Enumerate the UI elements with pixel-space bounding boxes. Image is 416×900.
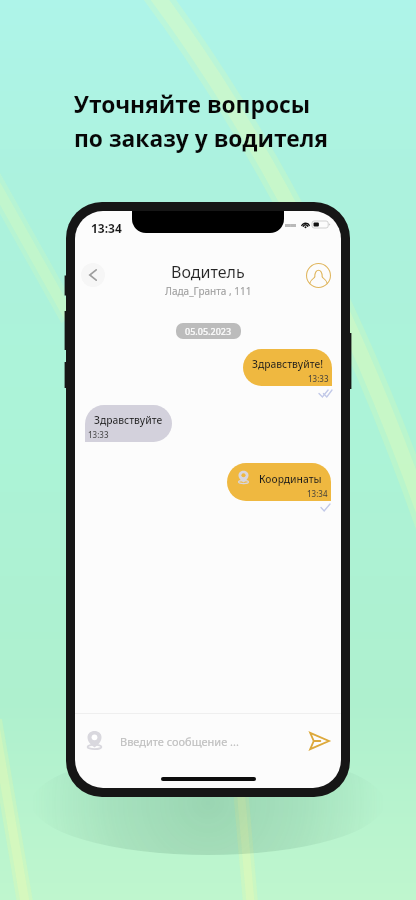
button[interactable]: Attach location bbox=[84, 730, 105, 751]
button[interactable]: Координаты bbox=[227, 463, 331, 501]
staticText: Введите сообщение ... bbox=[120, 734, 239, 749]
staticText: 13:34 bbox=[307, 488, 328, 499]
button[interactable]: Здравствуйте bbox=[85, 405, 172, 442]
staticText: 13:33 bbox=[308, 373, 329, 384]
staticText: Водитель bbox=[171, 261, 245, 283]
staticText: Здравствуйте bbox=[94, 413, 163, 427]
staticText: 05.05.2023 bbox=[185, 325, 232, 337]
staticText: Лада_Гранта , 111 bbox=[165, 284, 252, 298]
staticText: по заказу у водителя bbox=[74, 123, 328, 154]
staticText: Уточняйте вопросы bbox=[74, 89, 311, 120]
staticText: Здравствуйте! bbox=[252, 357, 323, 371]
staticText: Координаты bbox=[259, 472, 322, 486]
button[interactable]: Здравствуйте! bbox=[243, 349, 332, 386]
staticText: 13:34 bbox=[91, 220, 122, 236]
button[interactable]: Back bbox=[81, 263, 105, 287]
button[interactable]: Send bbox=[308, 730, 330, 752]
staticText: 13:33 bbox=[88, 429, 109, 440]
button[interactable]: Profile bbox=[306, 263, 331, 288]
